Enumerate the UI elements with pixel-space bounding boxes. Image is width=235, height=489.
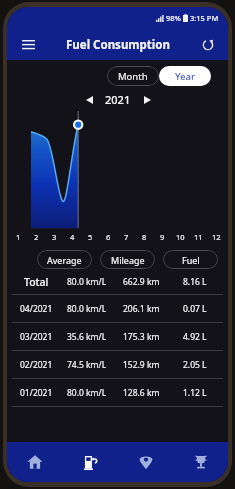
button[interactable]: Menu (15, 32, 41, 58)
staticText: 1 (16, 232, 21, 242)
staticText: 12 (212, 232, 221, 242)
button[interactable]: Month (107, 66, 159, 86)
button[interactable]: 03/2021 (7, 323, 228, 350)
staticText: 35.6 km/L (67, 331, 107, 343)
staticText: 152.9 km (123, 359, 160, 371)
button[interactable]: Total (7, 269, 228, 294)
staticText: 175.3 km (123, 331, 160, 343)
staticText: 2.05 L (183, 359, 207, 371)
staticText: 04/2021 (20, 303, 53, 315)
staticText: 03/2021 (20, 331, 53, 343)
staticText: 80.0 km/L (67, 387, 107, 399)
staticText: 0.07 L (183, 303, 207, 315)
staticText: 2021 (105, 92, 131, 107)
button[interactable]: Places (118, 442, 173, 482)
staticText: 9 (160, 232, 165, 242)
staticText: 8.16 L (183, 276, 207, 288)
button[interactable]: Mileage (100, 250, 155, 269)
staticText: 98% (166, 13, 181, 23)
staticText: Year (175, 70, 195, 83)
button[interactable]: 04/2021 (7, 295, 228, 322)
staticText: 7 (124, 232, 129, 242)
staticText: 4 (70, 232, 75, 242)
staticText: Mileage (111, 254, 145, 266)
button[interactable]: 01/2021 (7, 379, 228, 406)
staticText: 80.0 km/L (67, 276, 107, 288)
staticText: 11 (194, 232, 203, 242)
button[interactable]: Awards (173, 442, 228, 482)
button[interactable]: Home (7, 442, 63, 482)
staticText: 5 (88, 232, 93, 242)
staticText: Fuel Consumption (66, 37, 170, 53)
staticText: 206.1 km (123, 303, 160, 315)
staticText: 10 (176, 232, 185, 242)
staticText: Total (24, 275, 49, 289)
staticText: Month (118, 70, 148, 83)
staticText: 8 (142, 232, 147, 242)
button[interactable]: Refresh (195, 32, 221, 58)
button[interactable]: 02/2021 (7, 351, 228, 378)
button[interactable]: Next year (138, 91, 156, 109)
staticText: 3 (52, 232, 57, 242)
button[interactable]: Fuel (163, 250, 218, 269)
staticText: 2 (34, 232, 39, 242)
staticText: 01/2021 (20, 387, 53, 399)
button[interactable]: Average (37, 250, 92, 269)
staticText: Fuel (182, 254, 200, 266)
staticText: 6 (106, 232, 111, 242)
staticText: 4.92 L (183, 331, 207, 343)
button[interactable]: Fuel (63, 442, 118, 482)
staticText: 74.5 km/L (67, 359, 107, 371)
button[interactable]: Year (159, 66, 211, 86)
staticText: 662.9 km (123, 276, 160, 288)
staticText: 1.12 L (183, 387, 207, 399)
staticText: 3:15 PM (190, 13, 219, 23)
staticText: 80.0 km/L (67, 303, 107, 315)
staticText: 02/2021 (20, 359, 53, 371)
button[interactable]: Previous year (80, 91, 98, 109)
staticText: 128.6 km (123, 387, 160, 399)
staticText: Average (47, 254, 82, 266)
